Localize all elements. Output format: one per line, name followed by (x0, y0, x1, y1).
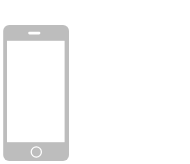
button[interactable]: Smartphone illustration (0, 0, 190, 164)
